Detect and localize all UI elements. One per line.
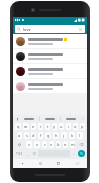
staticText: b <box>57 142 60 147</box>
button[interactable] <box>13 34 87 48</box>
button[interactable]: Home <box>31 159 49 168</box>
staticText: m <box>71 142 75 147</box>
staticText: love <box>23 27 31 32</box>
button[interactable]: Search <box>15 25 85 33</box>
staticText: c <box>44 142 46 147</box>
button[interactable] <box>13 64 87 78</box>
button[interactable]: z <box>26 141 32 148</box>
button[interactable]: d <box>31 132 36 139</box>
button[interactable]: a <box>17 132 22 139</box>
button[interactable]: v <box>49 141 54 148</box>
staticText: q <box>17 124 20 129</box>
staticText: j <box>63 133 65 138</box>
staticText: a <box>18 133 21 138</box>
button[interactable]: l <box>77 132 83 139</box>
button[interactable]: Shift <box>15 141 24 148</box>
staticText: t <box>47 124 49 129</box>
button[interactable]: Recent apps <box>49 159 68 168</box>
button[interactable]: h <box>53 132 59 139</box>
button[interactable]: Clear search <box>78 27 83 32</box>
button[interactable]: q <box>15 123 21 130</box>
staticText: r <box>40 124 42 129</box>
button[interactable] <box>13 79 87 93</box>
button[interactable]: k <box>69 132 75 139</box>
button[interactable]: Backspace <box>77 141 85 148</box>
button[interactable]: x <box>34 141 40 148</box>
staticText: v <box>50 142 53 147</box>
button[interactable]: t <box>45 123 50 130</box>
button[interactable]: y <box>52 123 57 130</box>
button[interactable]: Emoji <box>32 150 36 157</box>
button[interactable]: u <box>59 123 64 130</box>
staticText: p <box>81 124 84 129</box>
button[interactable]: . <box>72 150 75 157</box>
staticText: h <box>55 133 58 138</box>
button[interactable]: Voice input <box>15 117 19 121</box>
button[interactable] <box>13 49 87 63</box>
staticText: u <box>60 124 63 129</box>
staticText: e <box>32 124 35 129</box>
staticText: k <box>71 133 74 138</box>
button[interactable]: j <box>61 132 67 139</box>
button[interactable]: e <box>31 123 36 130</box>
button[interactable]: , <box>26 150 30 157</box>
staticText: w <box>24 124 28 129</box>
button[interactable]: Keyboard options <box>68 159 87 168</box>
staticText: l <box>79 133 81 138</box>
button[interactable]: s <box>24 132 29 139</box>
staticText: n <box>64 142 67 147</box>
staticText: s <box>26 133 28 138</box>
button[interactable]: w <box>23 123 29 130</box>
staticText: x <box>36 142 39 147</box>
button[interactable]: c <box>42 141 47 148</box>
staticText: z <box>28 142 30 147</box>
staticText: o <box>74 124 77 129</box>
button[interactable]: o <box>73 123 78 130</box>
button[interactable]: g <box>45 132 51 139</box>
button[interactable]: r <box>38 123 43 130</box>
staticText: d <box>32 133 35 138</box>
button[interactable]: f <box>38 132 43 139</box>
staticText: f <box>40 133 42 138</box>
staticText: , <box>28 151 29 156</box>
staticText: . <box>73 151 74 156</box>
staticText: ?123 <box>16 152 23 156</box>
staticText: g <box>47 133 50 138</box>
button[interactable]: i <box>66 123 71 130</box>
button[interactable]: m <box>70 141 75 148</box>
button[interactable]: b <box>56 141 61 148</box>
button[interactable]: More suggestions <box>81 117 85 121</box>
other: Search <box>17 27 21 31</box>
button[interactable] <box>61 118 81 120</box>
button[interactable] <box>40 118 60 120</box>
button[interactable]: p <box>80 123 85 130</box>
button[interactable]: ?123 <box>15 150 24 157</box>
button[interactable]: Back <box>13 159 31 168</box>
staticText: i <box>68 124 70 129</box>
staticText: y <box>53 124 56 129</box>
button[interactable]: n <box>63 141 68 148</box>
button[interactable]: Search <box>78 150 85 157</box>
button[interactable] <box>19 118 39 120</box>
